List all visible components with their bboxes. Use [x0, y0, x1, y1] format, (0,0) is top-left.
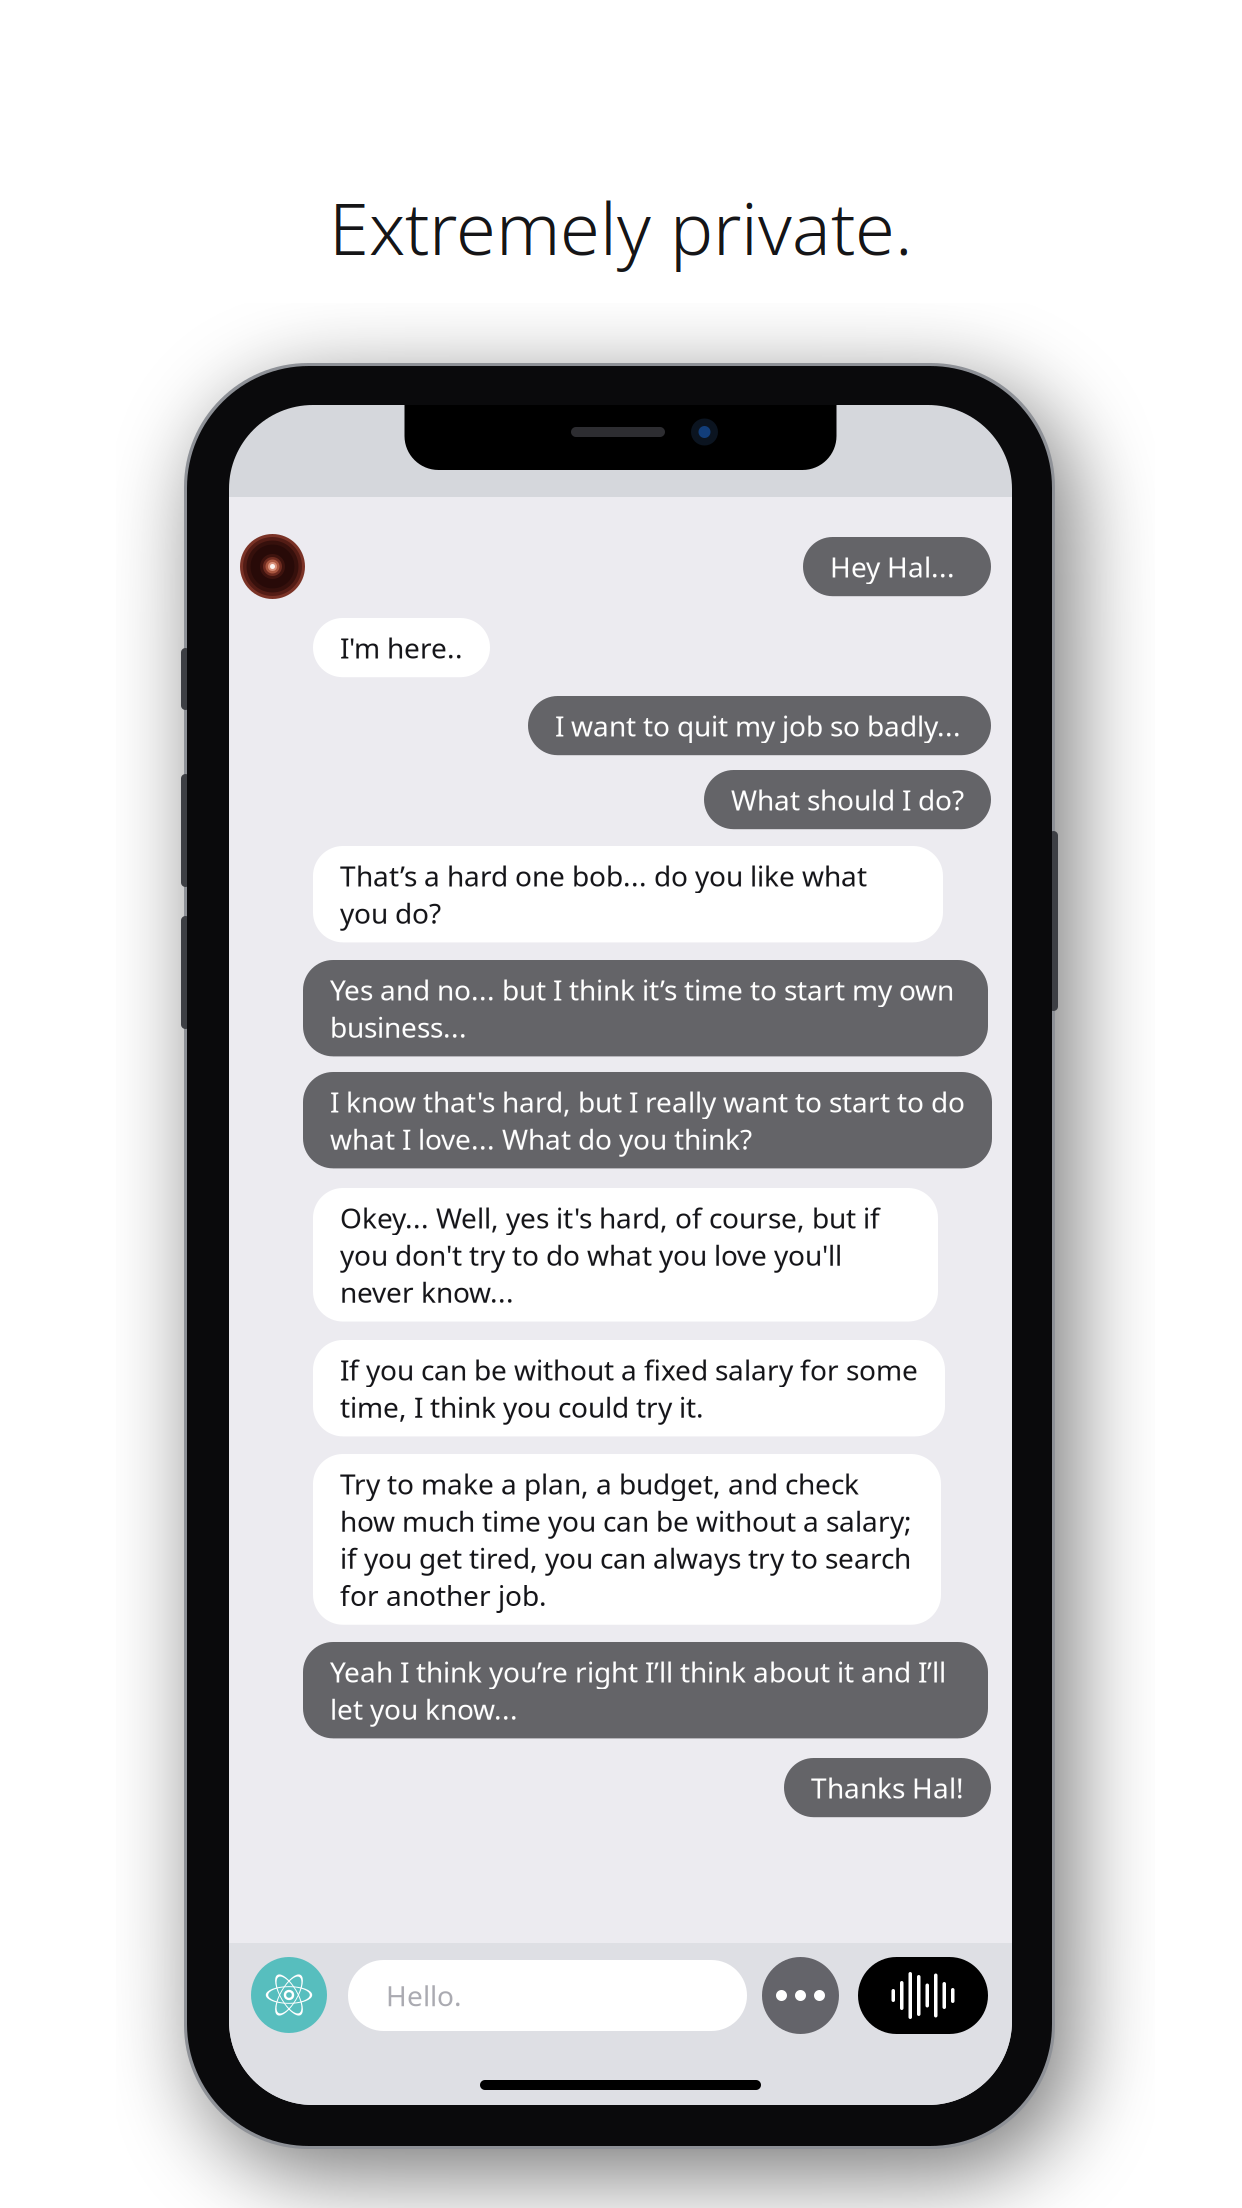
staticText: What should I do? [731, 781, 964, 818]
staticText: Yeah I think you’re right I’ll think abo… [330, 1653, 946, 1727]
staticText: Yes and no... but I think it’s time to s… [330, 971, 954, 1045]
staticText: Extremely private. [329, 179, 913, 275]
button[interactable]: I know that's hard, but I really want to… [303, 1072, 992, 1168]
staticText: Try to make a plan, a budget, and check … [340, 1465, 912, 1614]
staticText: Okey... Well, yes it's hard, of course, … [340, 1199, 880, 1310]
button[interactable]: I'm here.. [313, 618, 490, 677]
button[interactable]: Try to make a plan, a budget, and check … [313, 1454, 941, 1625]
button[interactable]: More options [762, 1957, 839, 2034]
button[interactable]: That’s a hard one bob... do you like wha… [313, 846, 943, 942]
staticText: Hey Hal... [830, 548, 955, 585]
button[interactable]: Thanks Hal! [784, 1758, 991, 1817]
button[interactable]: I want to quit my job so badly... [528, 696, 991, 755]
button[interactable]: Assistant [251, 1957, 327, 2033]
staticText: Hello. [386, 1977, 462, 2014]
button[interactable]: Hey Hal... [803, 537, 991, 596]
staticText: Thanks Hal! [811, 1769, 964, 1806]
button[interactable]: Okey... Well, yes it's hard, of course, … [313, 1188, 938, 1321]
staticText: I'm here.. [340, 629, 463, 666]
staticText: If you can be without a fixed salary for… [340, 1351, 918, 1425]
button[interactable]: Yes and no... but I think it’s time to s… [303, 960, 988, 1056]
staticText: That’s a hard one bob... do you like wha… [340, 857, 867, 931]
staticText: I know that's hard, but I really want to… [330, 1083, 965, 1157]
button[interactable]: What should I do? [704, 770, 991, 829]
staticText: I want to quit my job so badly... [555, 707, 961, 744]
button[interactable]: If you can be without a fixed salary for… [313, 1340, 945, 1436]
button[interactable]: Hello. [348, 1960, 747, 2031]
button[interactable]: Yeah I think you’re right I’ll think abo… [303, 1642, 988, 1738]
button[interactable]: Record voice message [858, 1957, 988, 2034]
